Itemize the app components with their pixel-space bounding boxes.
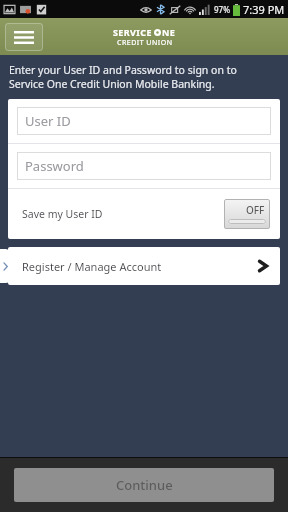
staticText: Enter your User ID and Password to sign … (9, 63, 274, 91)
staticText: 7:39 PM (243, 2, 285, 17)
button[interactable]: User ID (8, 99, 280, 143)
button[interactable]: Open side panel (0, 249, 11, 283)
staticText: OFF (246, 203, 265, 217)
button[interactable]: Register / Manage Account (8, 247, 280, 285)
button[interactable]: Password (8, 144, 280, 188)
button[interactable]: Save my User ID toggle, off (224, 199, 270, 229)
staticText: Save my User ID (22, 207, 103, 221)
staticText: NE (162, 26, 176, 38)
staticText: Password (25, 157, 84, 175)
staticText: Continue (116, 476, 173, 494)
staticText: SERVICE (113, 26, 152, 38)
staticText: User ID (25, 112, 71, 130)
staticText: CREDIT UNION (117, 38, 173, 48)
staticText: Register / Manage Account (22, 259, 162, 274)
button[interactable]: Continue (14, 468, 274, 502)
button[interactable]: Menu (5, 23, 43, 51)
staticText: 97% (214, 4, 230, 15)
button[interactable]: Save my User ID (8, 189, 280, 239)
